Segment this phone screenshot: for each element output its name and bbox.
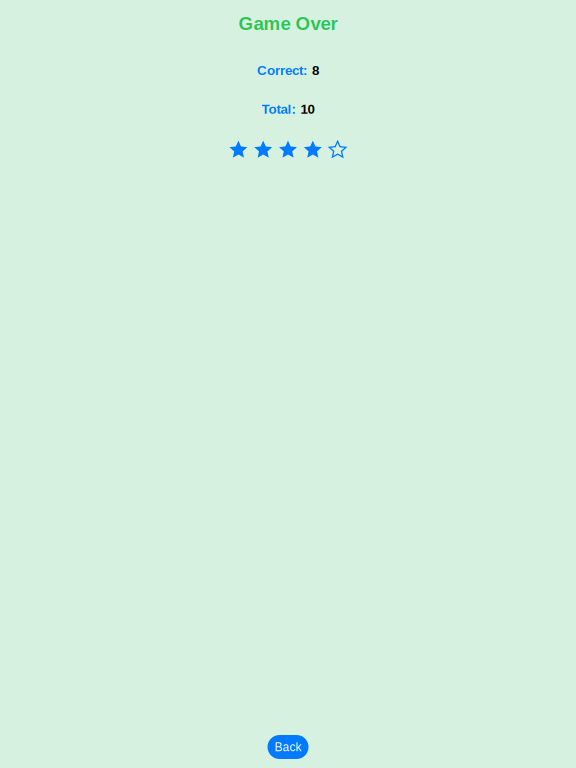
staticText: 10: [300, 102, 314, 117]
staticText: Game Over: [238, 13, 337, 34]
staticText: Total:: [261, 102, 295, 117]
button[interactable]: Back: [267, 735, 308, 759]
staticText: Back: [274, 740, 301, 754]
staticText: 8: [312, 63, 319, 78]
staticText: Correct:: [257, 63, 307, 78]
